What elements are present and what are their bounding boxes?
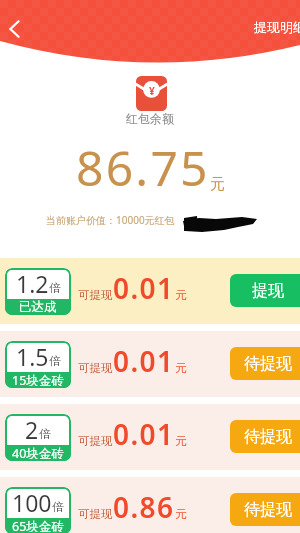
- staticText: 1.2: [16, 268, 49, 299]
- staticText: 元: [175, 288, 187, 302]
- staticText: 已达成: [19, 299, 57, 315]
- staticText: 2: [25, 414, 39, 445]
- staticText: 15块金砖: [12, 372, 64, 388]
- staticText: 1.5: [16, 341, 49, 372]
- staticText: 可提现: [78, 288, 113, 302]
- button[interactable]: 2: [0, 404, 300, 470]
- staticText: 待提现: [244, 427, 292, 447]
- staticText: 0.01: [113, 415, 175, 453]
- staticText: 元: [210, 175, 225, 194]
- button[interactable]: 100: [0, 477, 300, 533]
- staticText: 可提现: [78, 361, 113, 375]
- staticText: 0.01: [113, 342, 175, 380]
- button[interactable]: 提现: [230, 274, 300, 307]
- staticText: 倍: [49, 280, 61, 295]
- staticText: 0.86: [113, 488, 175, 526]
- staticText: 倍: [39, 426, 51, 441]
- staticText: 提现: [252, 281, 284, 301]
- staticText: 元: [175, 507, 187, 521]
- staticText: 65块金砖: [12, 518, 64, 533]
- button[interactable]: 提现明细: [254, 15, 300, 39]
- staticText: 待提现: [244, 354, 292, 374]
- staticText: ¥: [149, 84, 155, 98]
- staticText: 元: [175, 434, 187, 448]
- staticText: 可提现: [78, 507, 113, 521]
- button[interactable]: 1.2: [0, 258, 300, 324]
- button[interactable]: 待提现: [230, 347, 300, 380]
- staticText: 倍: [52, 499, 64, 514]
- staticText: 可提现: [78, 434, 113, 448]
- staticText: 0.01: [113, 269, 175, 307]
- staticText: 86.75: [76, 135, 210, 200]
- staticText: 100: [12, 487, 52, 518]
- button[interactable]: 待提现: [230, 420, 300, 453]
- staticText: 元: [175, 361, 187, 375]
- staticText: 红包余额: [0, 111, 300, 126]
- button[interactable]: 待提现: [230, 493, 300, 526]
- staticText: 提现明细: [254, 19, 300, 35]
- staticText: 倍: [49, 353, 61, 368]
- staticText: 待提现: [244, 500, 292, 520]
- button[interactable]: Back: [2, 17, 26, 41]
- staticText: 40块金砖: [12, 445, 64, 461]
- button[interactable]: 1.5: [0, 331, 300, 397]
- staticText: 当前账户价值：10000元红包: [46, 213, 175, 227]
